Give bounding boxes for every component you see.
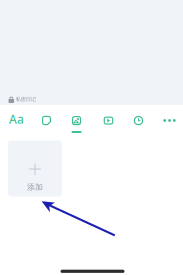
button[interactable]: Photo <box>62 110 90 136</box>
staticText: 私密日记 <box>16 96 36 103</box>
button[interactable]: Sticker <box>32 110 60 136</box>
button[interactable]: Time <box>124 110 152 136</box>
button[interactable]: 添加 <box>8 140 62 196</box>
staticText: 添加 <box>27 182 43 192</box>
staticText: Aa <box>9 111 24 127</box>
button[interactable]: Video <box>94 110 122 136</box>
button[interactable]: More <box>155 109 183 132</box>
button[interactable]: Aa <box>2 107 30 130</box>
